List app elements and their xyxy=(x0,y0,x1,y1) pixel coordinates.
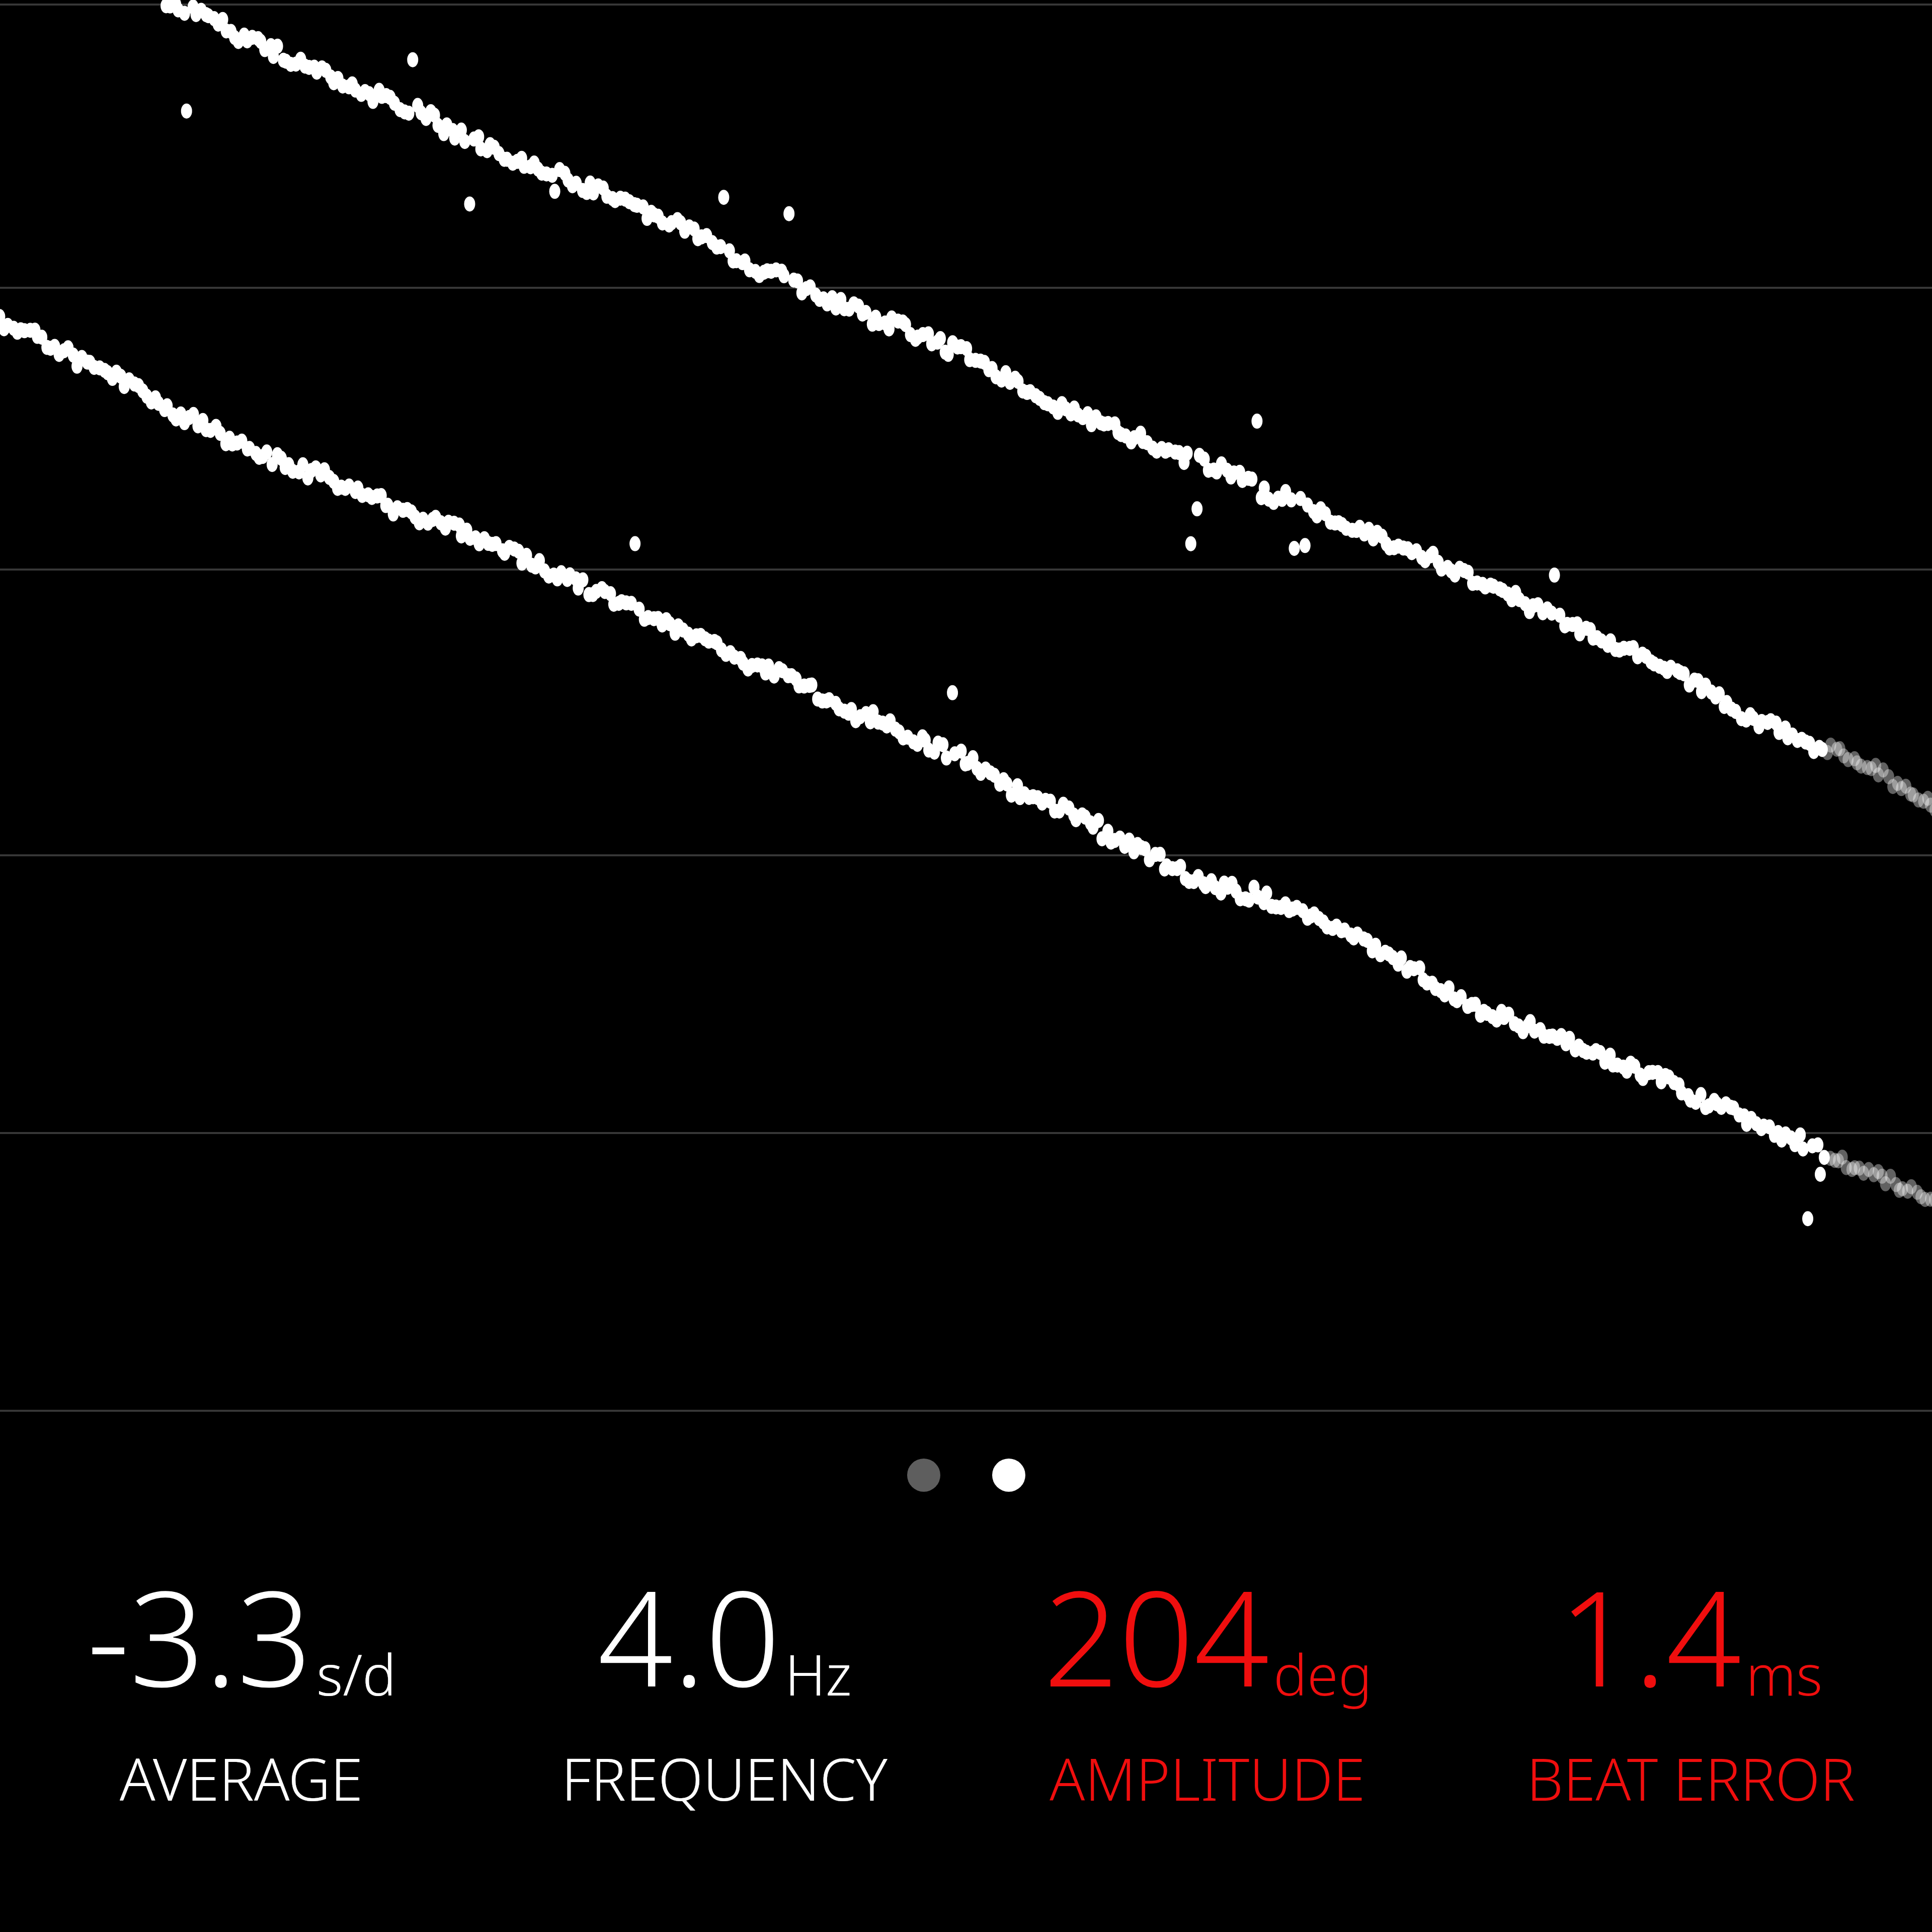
staticText: FREQUENCY xyxy=(561,1738,888,1818)
staticText: Hz xyxy=(785,1635,852,1712)
staticText: 1.4 xyxy=(1559,1546,1742,1725)
staticText: -3.3 xyxy=(87,1546,312,1725)
staticText: ms xyxy=(1746,1635,1823,1712)
button[interactable]: 4.0 xyxy=(483,1538,966,1932)
staticText: s/d xyxy=(316,1635,396,1712)
staticText: AMPLITUDE xyxy=(1050,1738,1365,1818)
staticText: AVERAGE xyxy=(120,1738,363,1818)
button[interactable]: Page 1 xyxy=(907,1459,940,1492)
button[interactable]: Page 2, selected xyxy=(992,1459,1025,1492)
button[interactable]: 204 xyxy=(966,1538,1449,1932)
staticText: 204 xyxy=(1043,1546,1269,1725)
button[interactable]: -3.3 xyxy=(0,1538,483,1932)
button[interactable]: 1.4 xyxy=(1449,1538,1932,1932)
staticText: 4.0 xyxy=(598,1546,781,1725)
staticText: deg xyxy=(1273,1635,1372,1712)
button[interactable]: Rate trace graph xyxy=(0,0,1932,1413)
staticText: BEAT ERROR xyxy=(1526,1738,1855,1818)
